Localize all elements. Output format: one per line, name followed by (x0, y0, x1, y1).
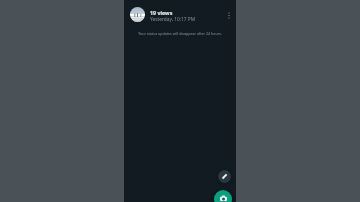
button[interactable]: More options (220, 6, 237, 23)
staticText: Yesterday, 10:17 PM (150, 16, 195, 23)
button[interactable]: Write status (218, 170, 231, 183)
button[interactable]: Camera (214, 190, 232, 202)
staticText: 19 views (150, 9, 173, 16)
staticText: Your status updates will disappear after… (124, 31, 236, 36)
button[interactable] (124, 0, 236, 29)
